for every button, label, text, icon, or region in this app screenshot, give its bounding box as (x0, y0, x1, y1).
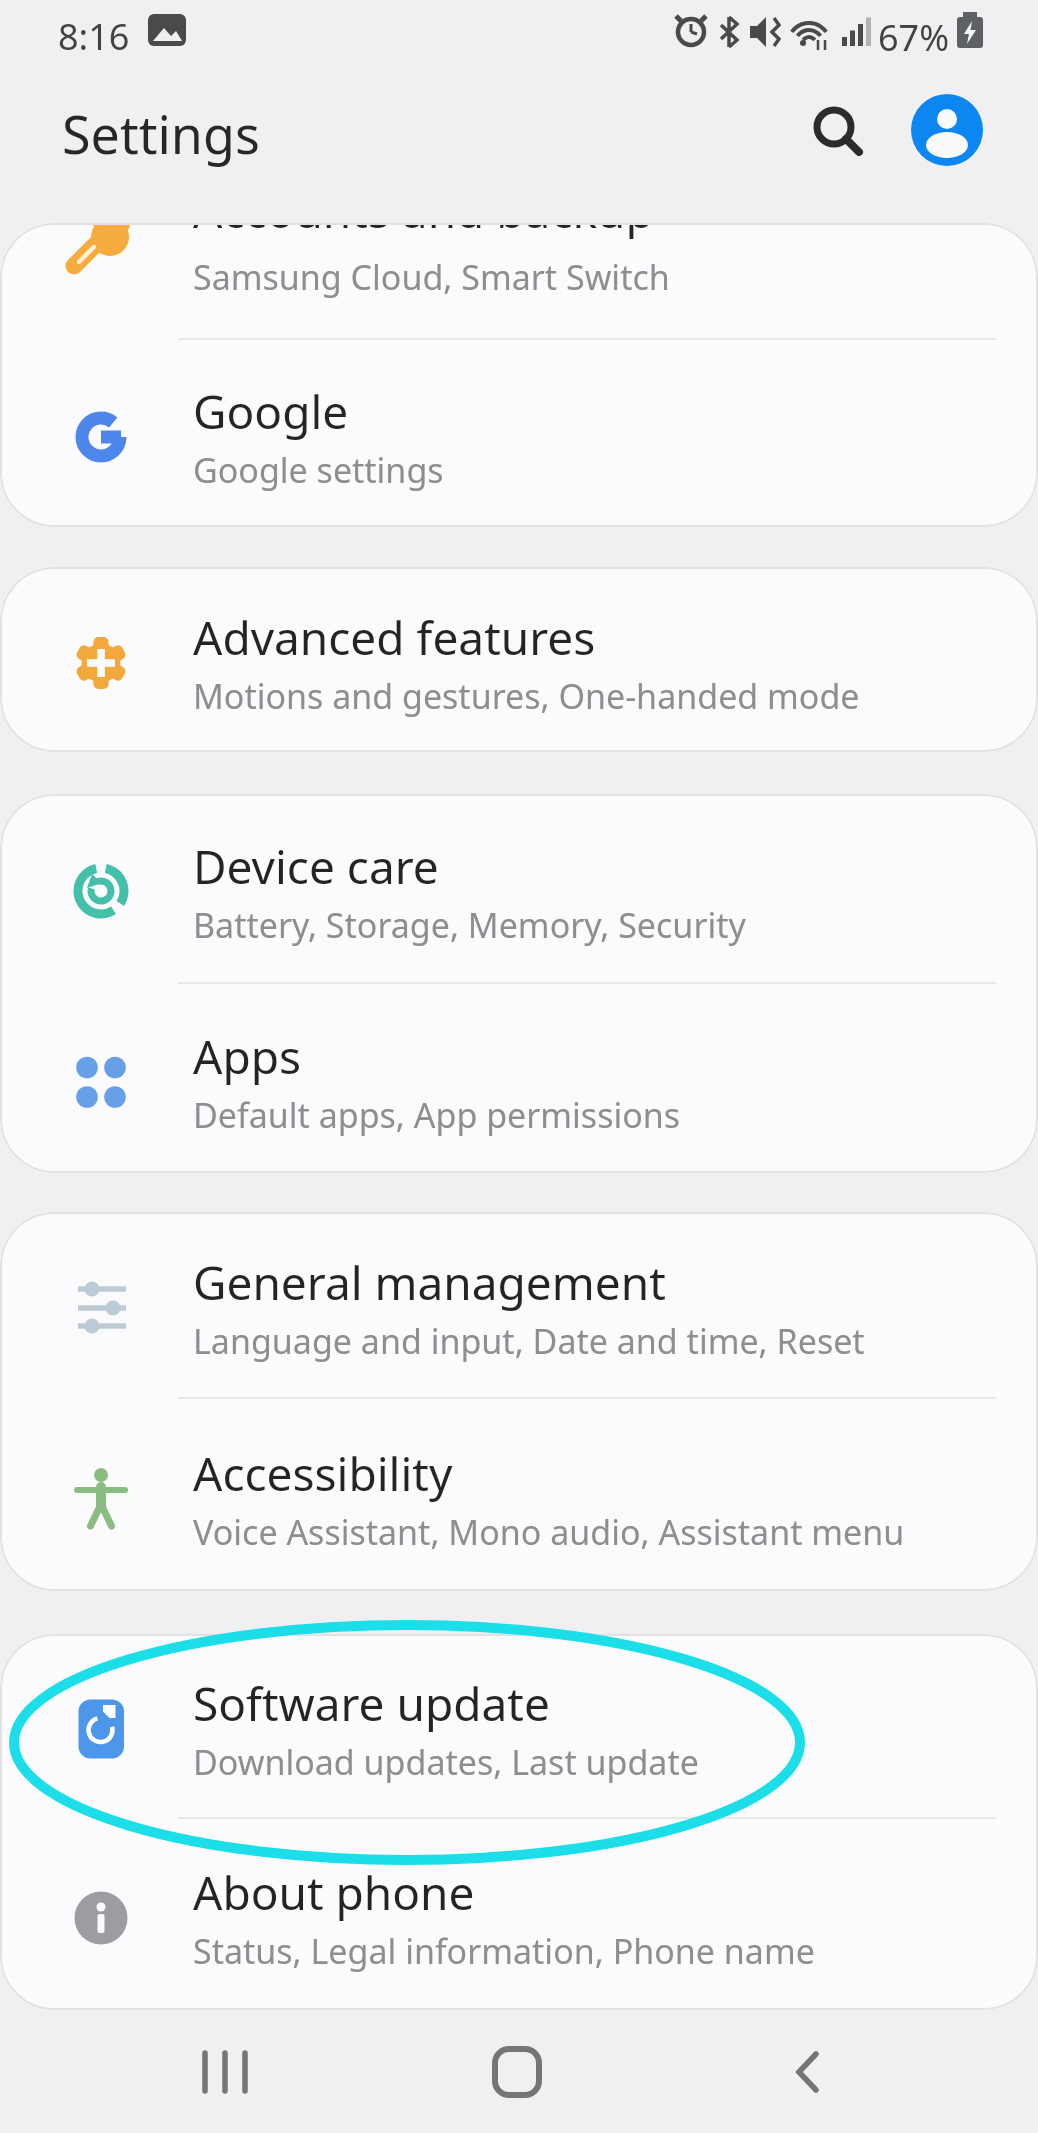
staticText: Motions and gestures, One-handed mode (193, 673, 860, 719)
button[interactable]: Accounts and backup (0, 223, 1038, 338)
button[interactable]: About phone (0, 1819, 1038, 2010)
staticText: Language and input, Date and time, Reset (193, 1318, 865, 1364)
button[interactable] (692, 2010, 1038, 2133)
staticText: Voice Assistant, Mono audio, Assistant m… (193, 1509, 905, 1555)
staticText: About phone (193, 1861, 475, 1924)
staticText: Device care (193, 835, 439, 898)
staticText: Status, Legal information, Phone name (193, 1928, 815, 1974)
button[interactable]: Software update (0, 1634, 1038, 1817)
staticText: Accessibility (193, 1442, 453, 1505)
staticText: Settings (62, 98, 260, 169)
staticText: Apps (193, 1025, 302, 1088)
button[interactable] (0, 2010, 346, 2133)
button[interactable] (346, 2010, 692, 2133)
button[interactable]: Google (0, 340, 1038, 527)
button[interactable]: Device care (0, 794, 1038, 982)
staticText: Advanced features (193, 606, 596, 669)
staticText: Default apps, App permissions (193, 1092, 681, 1138)
staticText: 8:16 (58, 12, 130, 61)
staticText: Accounts and backup (193, 223, 654, 242)
staticText: Google (193, 380, 349, 443)
staticText: Download updates, Last update (193, 1739, 699, 1785)
staticText: Software update (193, 1672, 550, 1735)
staticText: Samsung Cloud, Smart Switch (193, 254, 670, 300)
staticText: 67% (878, 13, 950, 62)
button[interactable]: Accessibility (0, 1399, 1038, 1591)
staticText: General management (193, 1251, 666, 1314)
button[interactable] (911, 94, 983, 166)
button[interactable]: General management (0, 1212, 1038, 1397)
staticText: Battery, Storage, Memory, Security (193, 902, 746, 948)
button[interactable]: Apps (0, 984, 1038, 1173)
staticText: Google settings (193, 447, 444, 493)
button[interactable]: Advanced features (0, 567, 1038, 752)
button[interactable] (800, 94, 872, 166)
